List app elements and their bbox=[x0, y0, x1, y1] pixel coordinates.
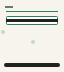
button[interactable] bbox=[6, 16, 58, 25]
button[interactable] bbox=[4, 63, 60, 67]
